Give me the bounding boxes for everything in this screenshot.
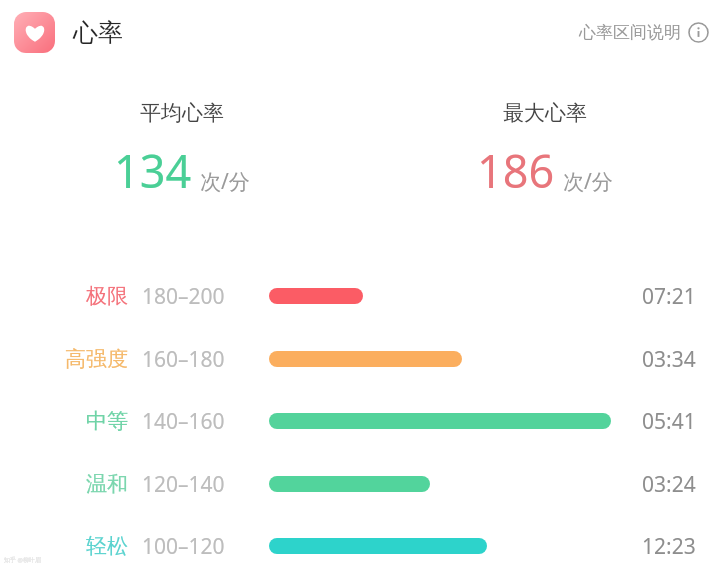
button[interactable]: 中等 [0,390,727,452]
staticText: 180–200 [142,282,225,311]
staticText: 12:23 [642,532,696,561]
button[interactable]: 高强度 [0,328,727,390]
staticText: 100–120 [142,532,225,561]
staticText: 03:34 [642,345,696,374]
staticText: 07:21 [642,282,696,311]
staticText: 140–160 [142,407,225,436]
staticText: 120–140 [142,470,225,499]
staticText: 次/分 [200,167,250,196]
button[interactable]: 轻松 [0,515,727,577]
staticText: 134 [114,140,192,201]
staticText: 次/分 [563,167,613,196]
staticText: 最大心率 [503,100,587,126]
staticText: 高强度 [65,346,128,372]
staticText: 中等 [86,408,128,434]
button[interactable]: 心率区间说明 [567,14,721,51]
staticText: 轻松 [86,533,128,559]
staticText: 186 [477,140,555,201]
staticText: 160–180 [142,345,225,374]
staticText: 平均心率 [140,100,224,126]
button[interactable]: 温和 [0,453,727,515]
staticText: 03:24 [642,470,696,499]
staticText: 心率区间说明 [579,22,681,43]
staticText: 05:41 [642,407,696,436]
staticText: 知乎 @柳叶眉 [4,556,41,564]
staticText: 心率 [73,17,123,48]
button[interactable]: 极限 [0,265,727,327]
other: 心率区间说明 [688,22,709,43]
staticText: 极限 [86,283,128,309]
staticText: 温和 [86,471,128,497]
